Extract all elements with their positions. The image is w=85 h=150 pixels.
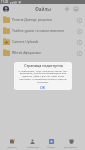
staticText: 11:20 — [1, 0, 9, 4]
button[interactable]: View options — [71, 4, 80, 13]
button[interactable]: Документы — [63, 131, 79, 150]
staticText: Избранное — [26, 145, 39, 148]
button[interactable]: Регина Доктор: рецепты — [0, 14, 85, 25]
staticText: OK — [40, 85, 46, 90]
button[interactable]: Whrzit Афоризмы — [0, 47, 85, 58]
button[interactable]: Info — [75, 49, 83, 57]
button[interactable]: Тайбле уроки то самостоятельн — [0, 25, 85, 36]
staticText: Страница недоступна — [24, 63, 63, 68]
button[interactable]: Camera Uploads — [0, 36, 85, 47]
button[interactable]: Info — [75, 16, 83, 24]
staticText: Новости — [7, 145, 17, 148]
button[interactable]: Info — [75, 38, 83, 46]
staticText: Camera Uploads — [12, 39, 75, 44]
staticText: Документы — [64, 145, 78, 148]
staticText: К сожалению, этой страницы сейчас нет. В… — [17, 69, 69, 84]
staticText: Whrzit Афоризмы — [12, 50, 75, 55]
button[interactable]: Избранное — [25, 131, 40, 150]
button[interactable]: Add — [62, 4, 71, 13]
staticText: Файлы — [35, 6, 51, 12]
button[interactable]: Account — [3, 6, 9, 12]
staticText: Файлы — [47, 145, 55, 148]
staticText: Регина Доктор: рецепты — [12, 17, 75, 22]
button[interactable]: Файлы — [46, 131, 56, 150]
button[interactable]: Info — [75, 27, 83, 35]
button[interactable]: OK — [17, 84, 69, 90]
staticText: Тайбле уроки то самостоятельн — [12, 28, 75, 33]
button[interactable]: Новости — [6, 131, 18, 150]
